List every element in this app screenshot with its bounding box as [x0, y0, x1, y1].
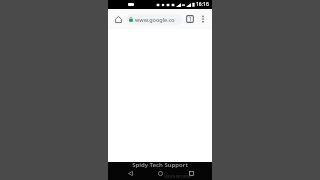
staticText: www.google.com	[135, 16, 179, 23]
button[interactable]: Recent apps	[182, 167, 200, 179]
button[interactable]: Switch tabs	[183, 12, 197, 26]
button[interactable]: More options	[197, 13, 209, 25]
button[interactable]: Home	[111, 12, 125, 26]
staticText: SCREEN RECORDER	[164, 175, 192, 179]
staticText: 1	[189, 16, 192, 23]
button[interactable]: Home	[151, 167, 169, 179]
staticText: 16:16	[196, 1, 209, 8]
button[interactable]: www.google.com	[126, 14, 182, 25]
staticText: Spidy Tech Support	[132, 161, 188, 169]
button[interactable]: Back	[121, 167, 139, 179]
